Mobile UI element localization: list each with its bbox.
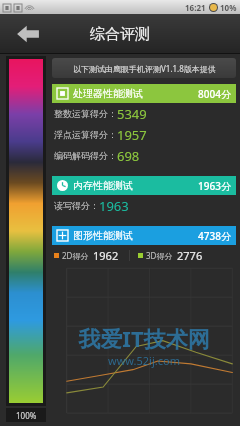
- staticText: 内存性能测试: [73, 179, 133, 192]
- staticText: 整数运算得分：: [54, 108, 117, 119]
- staticText: 2D得分: [62, 250, 89, 261]
- staticText: 5349: [117, 105, 147, 123]
- staticText: 图形性能测试: [73, 229, 133, 242]
- staticText: 698: [117, 147, 140, 165]
- staticText: 1963分: [198, 179, 231, 193]
- staticText: 浮点运算得分：: [54, 129, 117, 140]
- button[interactable]: 内存性能测试: [57, 176, 231, 195]
- staticText: 以下测试由鹰眼手机评测V1.1.8版本提供: [73, 63, 216, 74]
- button[interactable]: 处理器性能测试: [57, 84, 231, 103]
- staticText: 16:21: [185, 2, 206, 13]
- staticText: 综合评测: [90, 25, 150, 44]
- staticText: 读写得分：: [54, 200, 99, 211]
- staticText: 我爱IT技术网: [78, 323, 210, 353]
- button[interactable]: Back: [10, 16, 46, 52]
- staticText: www.52ij.com: [108, 353, 180, 368]
- button[interactable]: 以下测试由鹰眼手机评测V1.1.8版本提供: [52, 58, 236, 78]
- staticText: 3D得分: [146, 250, 173, 261]
- staticText: 处理器性能测试: [73, 87, 143, 100]
- staticText: 1963: [99, 197, 129, 215]
- staticText: 8004分: [198, 87, 231, 101]
- staticText: 编码解码得分：: [54, 150, 117, 161]
- staticText: 2776: [177, 248, 203, 263]
- button[interactable]: 图形性能测试: [57, 226, 231, 245]
- staticText: 10%: [220, 2, 237, 13]
- staticText: 4738分: [198, 229, 231, 243]
- staticText: 1962: [93, 248, 119, 263]
- staticText: 1957: [117, 126, 147, 144]
- staticText: 100%: [16, 410, 37, 421]
